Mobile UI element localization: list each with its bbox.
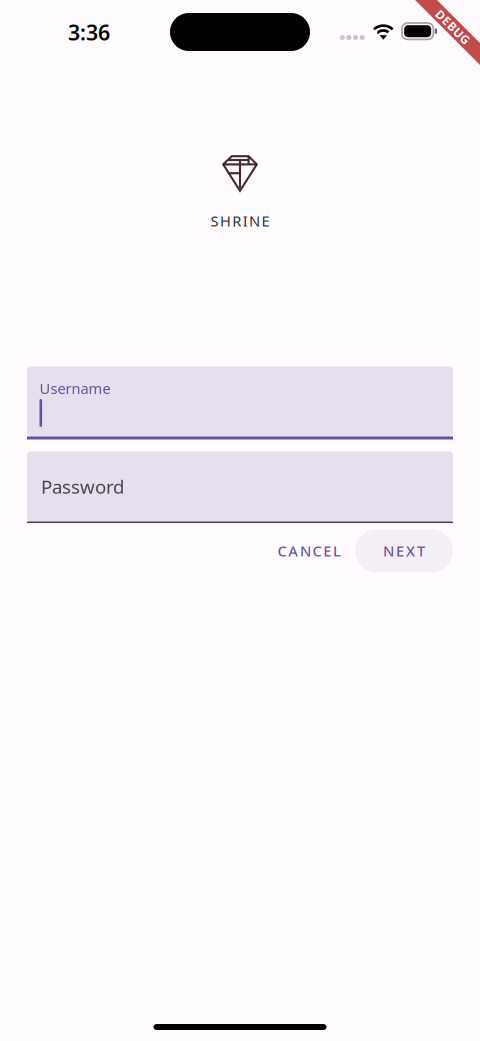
- staticText: E: [396, 541, 404, 561]
- button[interactable]: Password: [27, 451, 453, 523]
- staticText: T: [417, 541, 425, 561]
- staticText: N: [383, 541, 394, 561]
- staticText: E: [323, 541, 331, 561]
- staticText: N: [300, 541, 311, 561]
- staticText: N: [249, 211, 260, 230]
- staticText: E: [261, 211, 269, 230]
- staticText: R: [232, 211, 241, 230]
- staticText: C: [313, 541, 322, 561]
- staticText: G: [466, 19, 475, 35]
- staticText: B: [448, 19, 456, 35]
- staticText: S: [210, 211, 218, 230]
- staticText: 3:36: [68, 18, 110, 46]
- staticText: Password: [41, 474, 124, 499]
- staticText: D: [431, 19, 440, 35]
- staticText: Username: [39, 378, 110, 398]
- button[interactable]: C: [268, 529, 350, 573]
- button[interactable]: Username: [27, 366, 453, 439]
- staticText: I: [243, 211, 248, 230]
- button[interactable]: N: [355, 529, 453, 572]
- staticText: X: [406, 541, 415, 561]
- staticText: L: [333, 541, 341, 561]
- staticText: C: [277, 541, 286, 561]
- staticText: E: [441, 19, 448, 35]
- staticText: A: [288, 541, 298, 561]
- staticText: H: [220, 211, 231, 230]
- staticText: U: [456, 19, 465, 35]
